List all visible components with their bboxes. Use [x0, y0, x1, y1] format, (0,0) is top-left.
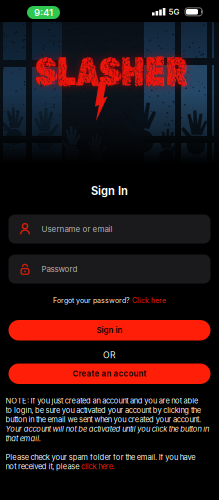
staticText: Create an account: [72, 369, 146, 378]
staticText: NOTE: If you just created an account and…: [5, 396, 198, 405]
button[interactable]: not received it, please: [5, 462, 114, 471]
staticText: button in the email we sent when you cre…: [5, 415, 201, 424]
staticText: Password: [41, 264, 77, 274]
button[interactable]: Username or email: [8, 214, 210, 243]
staticText: click here.: [81, 462, 114, 471]
staticText: to login, be sure you activated your acc…: [5, 406, 201, 415]
staticText: Click here: [132, 296, 166, 305]
staticText: Username or email: [41, 224, 112, 234]
button[interactable]: Sign in: [8, 320, 210, 340]
button[interactable]: Forgot your password?: [53, 296, 166, 305]
staticText: Sign in: [96, 325, 122, 335]
staticText: Sign In: [91, 184, 128, 198]
staticText: that email.: [5, 434, 41, 443]
button[interactable]: Password: [8, 254, 210, 283]
staticText: not received it, please: [5, 462, 81, 471]
staticText: Please check your spam folder for the em…: [5, 453, 195, 462]
staticText: OR: [103, 350, 116, 360]
staticText: SLASHER: [8, 47, 213, 96]
staticText: 5G: [168, 7, 179, 17]
staticText: 9:41: [34, 7, 53, 18]
button[interactable]: Create an account: [8, 363, 210, 384]
staticText: Forgot your password?: [53, 296, 132, 305]
staticText: Your account will not be activated until…: [5, 424, 209, 434]
